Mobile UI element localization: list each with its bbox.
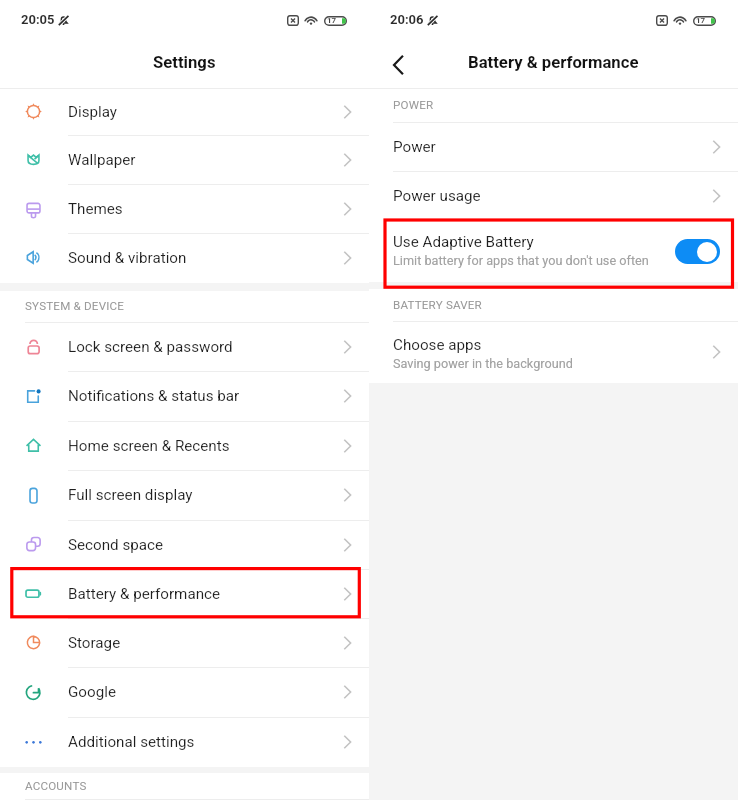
staticText: Lock screen & password — [68, 338, 233, 356]
staticText: Settings — [153, 53, 216, 73]
button[interactable]: Lock screen & password — [0, 323, 369, 372]
staticText: Home screen & Recents — [68, 437, 230, 455]
button[interactable]: Themes — [0, 185, 369, 234]
button[interactable]: Back — [381, 48, 415, 82]
staticText: BATTERY SAVER — [393, 298, 482, 312]
staticText: 17 — [327, 16, 337, 25]
button[interactable]: Additional settings — [0, 718, 369, 767]
button[interactable]: Sound & vibration — [0, 234, 369, 283]
staticText: Power usage — [393, 187, 481, 205]
button[interactable]: Notifications & status bar — [0, 372, 369, 422]
staticText: POWER — [393, 98, 434, 112]
button[interactable]: Power usage — [369, 172, 738, 221]
staticText: Google — [68, 683, 116, 701]
staticText: 17 — [696, 16, 706, 25]
staticText: Notifications & status bar — [68, 387, 240, 405]
button[interactable]: Display — [0, 89, 369, 136]
staticText: Battery & performance — [68, 585, 221, 603]
staticText: Use Adaptive Battery — [393, 233, 534, 251]
staticText: Power — [393, 138, 436, 156]
staticText: 20:06 — [390, 12, 424, 27]
button[interactable]: Google — [0, 668, 369, 718]
button[interactable]: Power — [369, 123, 738, 172]
staticText: Wallpaper — [68, 151, 136, 169]
staticText: Full screen display — [68, 486, 193, 504]
button[interactable]: Full screen display — [0, 471, 369, 521]
staticText: Display — [68, 103, 118, 121]
button[interactable]: Storage — [0, 619, 369, 668]
staticText: Saving power in the background — [393, 356, 573, 371]
button[interactable]: Wallpaper — [0, 136, 369, 185]
staticText: Themes — [68, 200, 123, 218]
button[interactable]: Home screen & Recents — [0, 422, 369, 471]
staticText: Additional settings — [68, 733, 195, 751]
staticText: Sound & vibration — [68, 249, 187, 267]
staticText: 20:05 — [21, 12, 55, 27]
button[interactable]: Choose apps — [369, 322, 738, 383]
staticText: Limit battery for apps that you don't us… — [393, 253, 649, 268]
staticText: Battery & performance — [468, 53, 639, 73]
staticText: Choose apps — [393, 336, 482, 354]
button[interactable]: Battery & performance — [0, 570, 369, 619]
staticText: ACCOUNTS — [25, 779, 87, 793]
staticText: SYSTEM & DEVICE — [25, 299, 125, 313]
staticText: Storage — [68, 634, 121, 652]
button[interactable]: Second space — [0, 521, 369, 570]
button[interactable]: Use Adaptive Battery — [369, 221, 738, 282]
staticText: Second space — [68, 536, 164, 554]
